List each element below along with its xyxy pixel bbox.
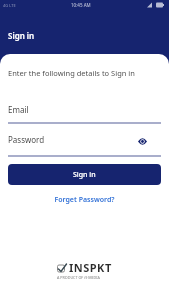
staticText: Enter the following details to Sign in bbox=[8, 68, 135, 78]
staticText: Email bbox=[8, 104, 29, 115]
button[interactable] bbox=[138, 138, 147, 145]
staticText: A PRODUCT OF i9 MEDIA bbox=[57, 275, 100, 280]
staticText: Password bbox=[8, 134, 45, 145]
staticText: 4G LTE bbox=[3, 3, 16, 8]
staticText: 10:45 AM bbox=[71, 2, 91, 8]
staticText: Sign in bbox=[8, 30, 35, 41]
button[interactable]: Sign in bbox=[8, 164, 161, 185]
staticText: INSPKT bbox=[69, 260, 112, 275]
button[interactable]: Forget Password? bbox=[8, 195, 161, 205]
staticText: Sign in bbox=[73, 170, 96, 180]
button[interactable]: Password bbox=[8, 134, 161, 145]
button[interactable]: Email bbox=[8, 104, 161, 124]
